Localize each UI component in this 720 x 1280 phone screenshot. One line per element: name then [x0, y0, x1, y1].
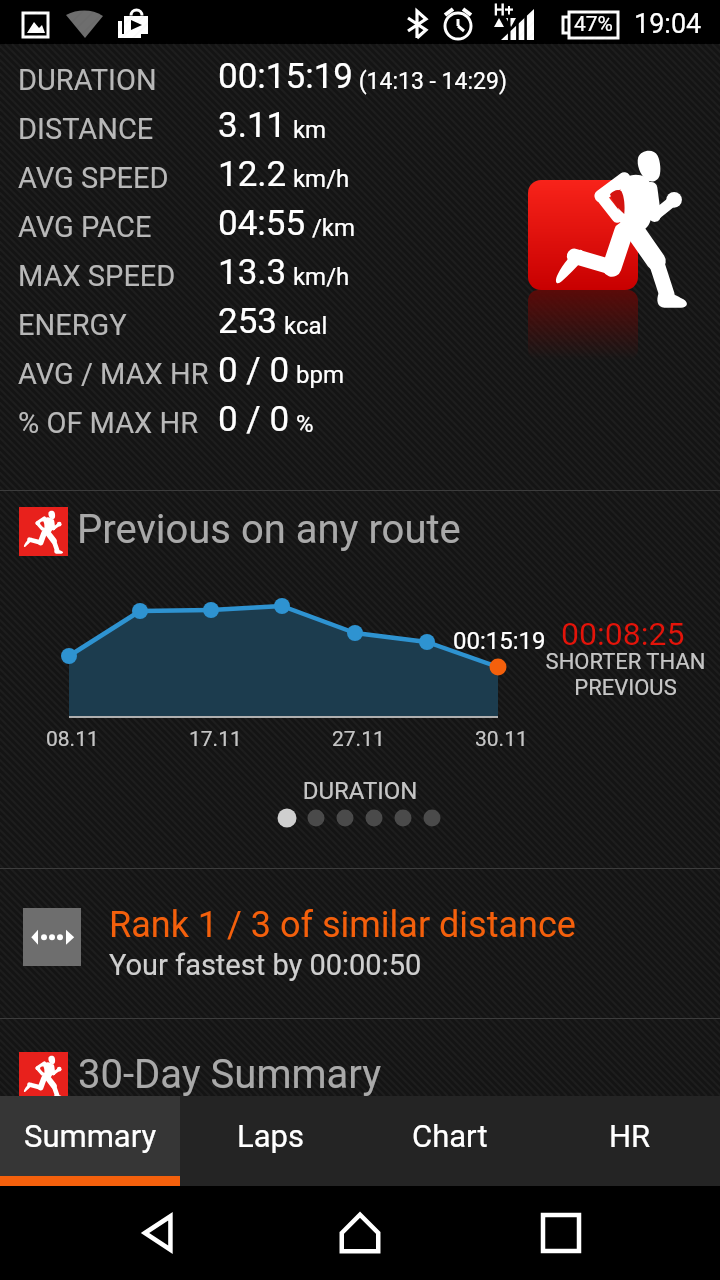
staticText: km/h [287, 165, 350, 193]
staticText: 04:55 [218, 203, 306, 243]
staticText: PREVIOUS [538, 675, 713, 701]
staticText: H+ [494, 1, 514, 19]
staticText: Chart [412, 1118, 488, 1154]
button[interactable]: Home [318, 1191, 402, 1275]
staticText: AVG PACE [18, 210, 152, 244]
staticText: /km [306, 214, 356, 242]
staticText: 47% [574, 12, 613, 37]
staticText: 27.11 [332, 727, 385, 752]
staticText: 253 [218, 301, 278, 341]
button[interactable]: Compare similar distances [23, 908, 81, 966]
staticText: Laps [237, 1118, 304, 1154]
staticText: 0 / 0 [218, 399, 290, 439]
staticText: 00:15:19 [453, 627, 546, 655]
button[interactable]: Chart [360, 1096, 540, 1186]
staticText: AVG SPEED [18, 161, 169, 195]
staticText: 30-Day Summary [78, 1051, 382, 1098]
button[interactable]: HR [540, 1096, 720, 1186]
staticText: 3.11 [218, 105, 287, 145]
staticText: 19:04 [634, 8, 702, 40]
button[interactable]: Laps [180, 1096, 360, 1186]
staticText: kcal [278, 312, 328, 340]
button[interactable]: Summary [0, 1096, 180, 1186]
staticText: Rank 1 / 3 of similar distance [109, 904, 576, 946]
staticText: Previous on any route [77, 506, 461, 553]
staticText: DISTANCE [18, 112, 154, 146]
staticText: bpm [290, 361, 344, 389]
staticText: km/h [287, 263, 350, 291]
staticText: (14:13 - 14:29) [353, 68, 507, 95]
staticText: DURATION [18, 63, 157, 97]
staticText: SHORTER THAN [538, 649, 713, 675]
staticText: % OF MAX HR [18, 406, 199, 440]
button[interactable]: Recents [519, 1191, 603, 1275]
staticText: 30.11 [475, 727, 528, 752]
staticText: DURATION [0, 777, 720, 805]
staticText: ENERGY [18, 308, 127, 342]
staticText: MAX SPEED [18, 259, 176, 293]
staticText: Summary [24, 1118, 157, 1154]
staticText: 00:15:19 [218, 56, 353, 96]
button[interactable]: Back [117, 1191, 201, 1275]
staticText: AVG / MAX HR [18, 357, 209, 391]
staticText: 12.2 [218, 154, 287, 194]
staticText: % [290, 410, 314, 438]
staticText: Your fastest by 00:00:50 [109, 948, 422, 982]
staticText: 08.11 [46, 727, 99, 752]
staticText: km [287, 116, 327, 144]
staticText: 0 / 0 [218, 350, 290, 390]
staticText: HR [609, 1118, 651, 1154]
staticText: 17.11 [189, 727, 242, 752]
staticText: 00:08:25 [561, 615, 685, 653]
staticText: 13.3 [218, 252, 287, 292]
